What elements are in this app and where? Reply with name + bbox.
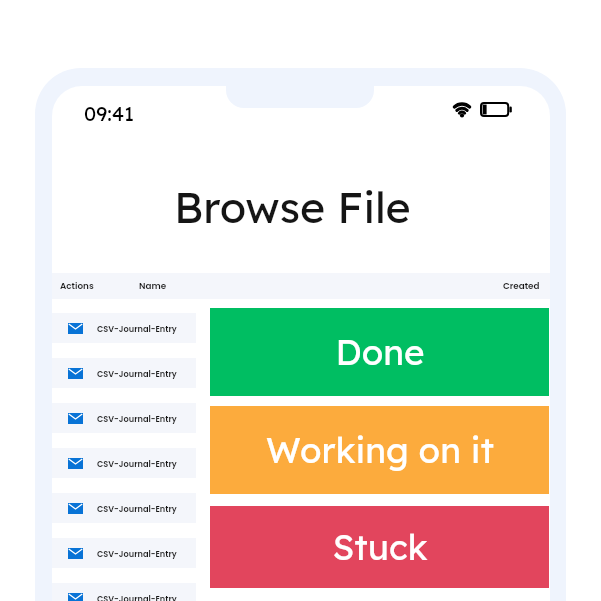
staticText: CSV-Journal-Entry <box>97 548 177 559</box>
button[interactable]: Done <box>210 308 549 396</box>
button[interactable]: CSV-Journal-Entry <box>52 448 196 478</box>
staticText: Name <box>139 280 167 292</box>
staticText: Stuck <box>332 525 428 569</box>
staticText: CSV-Journal-Entry <box>97 503 177 514</box>
staticText: CSV-Journal-Entry <box>97 323 177 334</box>
button[interactable]: CSV-Journal-Entry <box>52 403 196 433</box>
staticText: Created <box>503 280 540 292</box>
staticText: 09:41 <box>84 101 135 126</box>
staticText: Browse File <box>174 180 411 234</box>
button[interactable]: Working on it <box>210 406 549 494</box>
staticText: Working on it <box>266 428 494 472</box>
button[interactable]: CSV-Journal-Entry <box>52 538 196 568</box>
staticText: CSV-Journal-Entry <box>97 593 177 601</box>
other: Battery <box>480 102 512 117</box>
button[interactable]: CSV-Journal-Entry <box>52 313 196 343</box>
other: Wi-Fi <box>450 100 474 117</box>
button[interactable]: Stuck <box>210 506 549 588</box>
button[interactable]: CSV-Journal-Entry <box>52 583 196 601</box>
staticText: CSV-Journal-Entry <box>97 458 177 469</box>
staticText: CSV-Journal-Entry <box>97 413 177 424</box>
staticText: CSV-Journal-Entry <box>97 368 177 379</box>
button[interactable]: CSV-Journal-Entry <box>52 493 196 523</box>
button[interactable]: CSV-Journal-Entry <box>52 358 196 388</box>
staticText: Done <box>335 330 425 374</box>
staticText: Actions <box>60 280 94 292</box>
